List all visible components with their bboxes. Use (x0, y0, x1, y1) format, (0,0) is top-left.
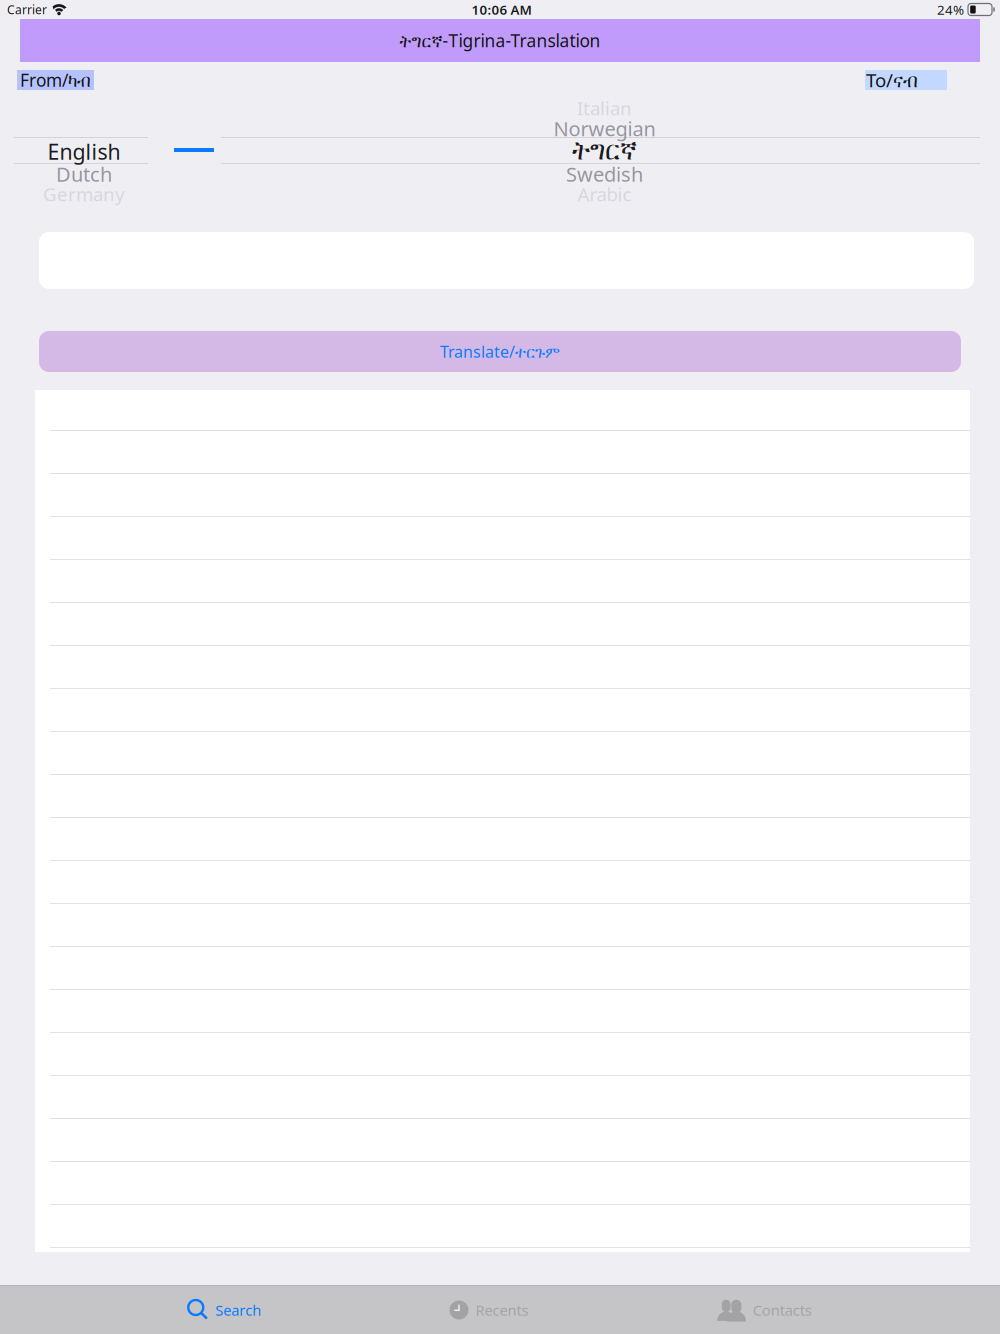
staticText: ትግርኛ (572, 138, 637, 164)
staticText: ትግርኛ-Tigrina-Translation (399, 29, 600, 52)
staticText: Swedish (566, 161, 643, 187)
staticText: 24% (937, 1, 964, 18)
staticText: Translate/ተርጉም (440, 341, 560, 362)
button[interactable]: Translate/ተርጉም (39, 331, 961, 372)
button[interactable]: Recents (449, 1286, 528, 1334)
staticText: Recents (475, 1300, 528, 1320)
staticText: Contacts (753, 1300, 812, 1320)
staticText: Arabic (577, 182, 631, 206)
staticText: 10:06 AM (471, 1, 531, 18)
staticText: Italian (577, 96, 632, 120)
staticText: Dutch (56, 161, 112, 187)
staticText: From/ካብ (20, 68, 91, 91)
staticText: Search (215, 1300, 261, 1320)
staticText: Germany (43, 182, 125, 206)
button[interactable]: Search (188, 1286, 261, 1334)
staticText: English (47, 137, 120, 166)
staticText: Carrier (7, 1, 47, 17)
staticText: Norwegian (553, 115, 655, 142)
button[interactable]: Contacts (717, 1286, 812, 1334)
staticText: To/ናብ (866, 68, 918, 92)
